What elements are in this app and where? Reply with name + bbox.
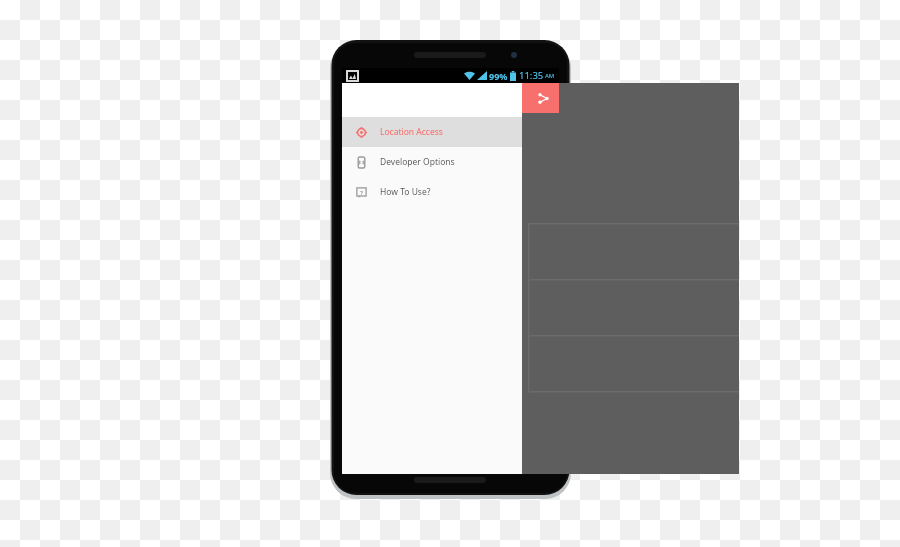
staticText: 11:35 — [519, 69, 544, 82]
button[interactable]: Developer Options — [342, 147, 522, 177]
staticText: Location Access — [380, 126, 443, 138]
staticText: AM — [545, 72, 555, 80]
button[interactable]: Location Access — [342, 117, 522, 147]
button[interactable]: ? — [342, 177, 522, 207]
staticText: ? — [360, 189, 363, 196]
button[interactable]: Share — [532, 87, 554, 109]
staticText: Developer Options — [380, 156, 455, 168]
button[interactable]: Share — [532, 87, 554, 109]
staticText: How To Use? — [380, 186, 431, 198]
staticText: 99% — [489, 70, 508, 82]
